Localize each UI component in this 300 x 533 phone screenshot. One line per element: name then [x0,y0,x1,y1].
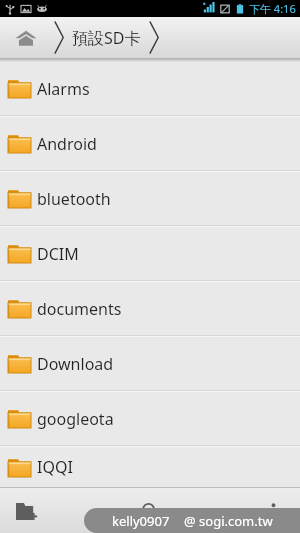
staticText: kelly0907 [112,512,170,530]
staticText: bluetooth [37,188,111,210]
button[interactable]: Alarms [0,62,300,115]
button[interactable]: documents [0,282,300,335]
button[interactable]: DCIM [0,227,300,280]
staticText: Alarms [37,78,90,100]
staticText: 預設SD卡 [72,27,141,49]
button[interactable]: 預設SD卡 [66,17,147,58]
button[interactable]: Download [0,337,300,390]
button[interactable]: New folder [10,494,44,528]
staticText: IQQI [37,456,73,478]
staticText: 下午 4:16 [249,1,296,16]
staticText: Download [37,353,114,375]
button[interactable]: Android [0,117,300,170]
staticText: DCIM [37,243,79,265]
button[interactable]: More options [256,494,290,528]
button[interactable]: Home [0,17,52,58]
button[interactable]: IQQI [0,447,300,487]
staticText: Android [37,133,97,155]
button[interactable]: Search [133,494,167,528]
button[interactable]: bluetooth [0,172,300,225]
staticText: googleota [37,408,114,430]
button[interactable]: googleota [0,392,300,445]
staticText: documents [37,298,122,320]
staticText: @ sogi.com.tw [184,512,273,530]
